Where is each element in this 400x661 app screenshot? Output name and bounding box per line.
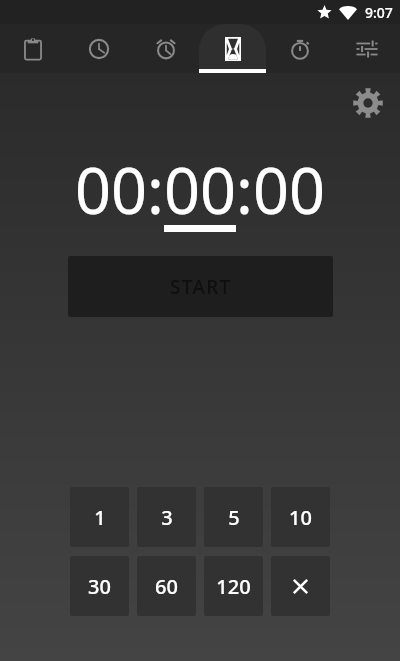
button[interactable]: 1 — [70, 487, 129, 547]
button[interactable]: 3 — [137, 487, 196, 547]
staticText: 30 — [88, 573, 111, 600]
button[interactable]: Settings tab — [333, 24, 400, 73]
button[interactable]: 5 — [204, 487, 263, 547]
button[interactable]: 120 — [204, 556, 263, 616]
staticText: 5 — [228, 504, 240, 531]
button[interactable]: Stopwatch — [266, 24, 333, 73]
staticText: 1 — [94, 504, 106, 531]
button[interactable]: 60 — [137, 556, 196, 616]
staticText: START — [170, 274, 232, 300]
staticText: 9:07 — [365, 3, 393, 22]
button[interactable]: Alarm — [132, 24, 199, 73]
staticText: 60 — [155, 573, 178, 600]
button[interactable]: 10 — [271, 487, 330, 547]
button[interactable]: Clear — [271, 556, 330, 616]
button[interactable]: Clock — [66, 24, 132, 73]
staticText: 10 — [289, 504, 312, 531]
button[interactable]: 30 — [70, 556, 129, 616]
button[interactable]: Timer — [199, 24, 266, 73]
button[interactable]: Settings — [351, 86, 385, 120]
staticText: 120 — [216, 573, 251, 600]
staticText: 00:00:00 — [75, 147, 325, 233]
staticText: 3 — [161, 504, 173, 531]
button[interactable]: Timers list — [0, 24, 66, 73]
